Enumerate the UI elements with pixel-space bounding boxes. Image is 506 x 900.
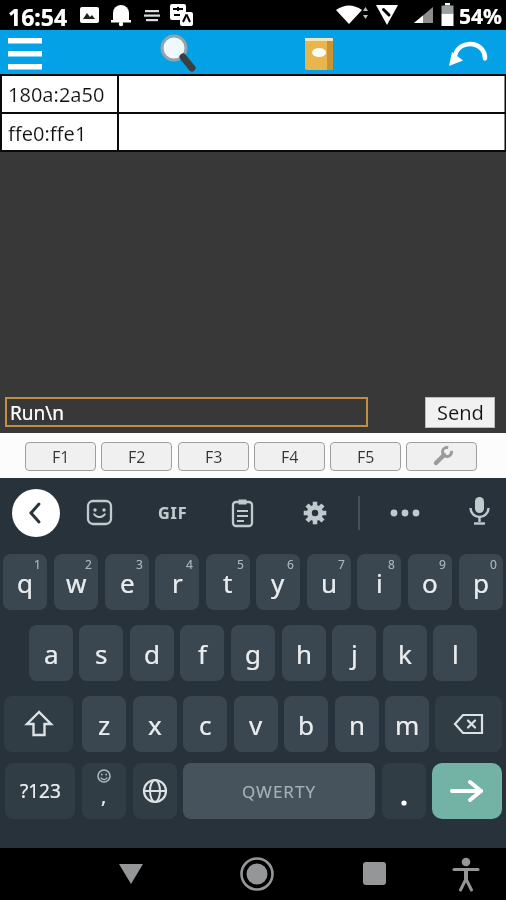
button[interactable] <box>4 696 73 752</box>
button[interactable]: 180a:2a50 <box>0 74 506 113</box>
staticText: z <box>98 707 111 742</box>
staticText: u <box>321 565 338 600</box>
staticText: 6 <box>287 556 294 572</box>
staticText: 3 <box>136 556 143 572</box>
button[interactable]: 4 <box>155 554 199 610</box>
button[interactable]: x <box>133 696 177 752</box>
button[interactable] <box>106 849 156 899</box>
staticText: 7 <box>338 556 345 572</box>
button[interactable]: z <box>82 696 126 752</box>
button[interactable] <box>133 763 177 819</box>
button[interactable]: f <box>180 625 224 681</box>
button[interactable]: QWERTY <box>183 763 375 819</box>
button[interactable] <box>442 32 494 74</box>
button[interactable] <box>232 849 282 899</box>
button[interactable] <box>435 696 502 752</box>
button[interactable]: 0 <box>459 554 503 610</box>
button[interactable]: F3 <box>178 442 249 471</box>
staticText: h <box>296 636 313 671</box>
staticText: Run\n <box>10 400 65 426</box>
staticText: j <box>351 636 358 671</box>
button[interactable] <box>442 849 490 899</box>
button[interactable]: s <box>79 625 123 681</box>
staticText: 1 <box>34 556 41 572</box>
button[interactable]: v <box>234 696 278 752</box>
button[interactable]: 7 <box>307 554 351 610</box>
staticText: k <box>398 636 412 671</box>
button[interactable]: , <box>82 763 126 819</box>
staticText: g <box>245 636 261 671</box>
button[interactable] <box>299 497 331 529</box>
staticText: d <box>144 636 160 671</box>
button[interactable]: l <box>433 625 477 681</box>
button[interactable]: F5 <box>330 442 401 471</box>
staticText: e <box>120 565 135 600</box>
button[interactable] <box>463 495 495 531</box>
staticText: i <box>376 565 383 600</box>
button[interactable]: d <box>130 625 174 681</box>
button[interactable]: 8 <box>357 554 401 610</box>
button[interactable] <box>406 442 477 471</box>
staticText: 8 <box>388 556 395 572</box>
staticText: , <box>101 782 107 809</box>
staticText: F1 <box>52 446 70 468</box>
button[interactable]: b <box>284 696 328 752</box>
button[interactable]: 6 <box>256 554 300 610</box>
staticText: v <box>249 707 263 742</box>
staticText: 2 <box>85 556 92 572</box>
button[interactable]: g <box>231 625 275 681</box>
button[interactable]: h <box>282 625 326 681</box>
button[interactable]: ffe0:ffe1 <box>0 113 506 152</box>
button[interactable]: F2 <box>101 442 172 471</box>
staticText: r <box>172 565 183 600</box>
button[interactable]: 9 <box>408 554 452 610</box>
button[interactable] <box>300 32 342 74</box>
button[interactable]: GIF <box>152 497 194 529</box>
button[interactable] <box>84 497 116 529</box>
button[interactable] <box>12 489 60 537</box>
button[interactable] <box>227 497 259 529</box>
staticText: F3 <box>205 446 223 468</box>
button[interactable]: m <box>385 696 429 752</box>
staticText: 180a:2a50 <box>8 81 105 108</box>
button[interactable]: 2 <box>54 554 98 610</box>
staticText: ?123 <box>20 778 61 804</box>
staticText: t <box>223 565 233 600</box>
staticText: q <box>17 565 33 600</box>
button[interactable]: n <box>335 696 379 752</box>
button[interactable] <box>155 32 199 74</box>
staticText: a <box>44 636 59 671</box>
button[interactable]: ?123 <box>5 763 75 819</box>
staticText: F4 <box>281 446 299 468</box>
staticText: QWERTY <box>242 780 317 803</box>
staticText: m <box>395 707 420 742</box>
button[interactable] <box>387 497 423 529</box>
button[interactable] <box>382 763 426 819</box>
staticText: o <box>422 565 438 600</box>
button[interactable] <box>0 30 58 74</box>
button[interactable]: k <box>383 625 427 681</box>
staticText: 0 <box>490 556 497 572</box>
button[interactable]: 3 <box>105 554 149 610</box>
button[interactable]: F4 <box>254 442 325 471</box>
staticText: c <box>199 707 212 742</box>
button[interactable]: 1 <box>3 554 47 610</box>
button[interactable]: j <box>332 625 376 681</box>
button[interactable]: 5 <box>206 554 250 610</box>
staticText: s <box>95 636 108 671</box>
button[interactable] <box>350 849 400 899</box>
staticText: ffe0:ffe1 <box>8 120 87 147</box>
staticText: y <box>271 565 285 600</box>
staticText: f <box>198 636 207 671</box>
button[interactable]: Run\n <box>5 397 368 427</box>
button[interactable]: a <box>29 625 73 681</box>
button[interactable]: F1 <box>25 442 96 471</box>
button[interactable]: c <box>183 696 227 752</box>
button[interactable]: Send <box>425 397 495 428</box>
staticText: 9 <box>439 556 446 572</box>
staticText: 54% <box>459 2 502 31</box>
staticText: 5 <box>237 556 244 572</box>
button[interactable] <box>432 763 502 819</box>
staticText: w <box>66 565 87 600</box>
staticText: l <box>452 636 459 671</box>
